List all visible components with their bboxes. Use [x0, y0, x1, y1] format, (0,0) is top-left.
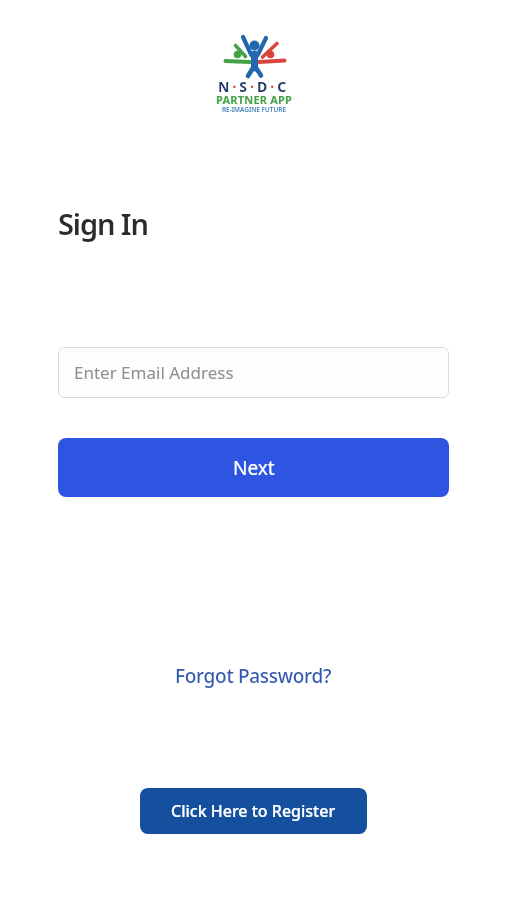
staticText: Click Here to Register: [171, 800, 336, 822]
staticText: Enter Email Address: [74, 361, 234, 384]
staticText: Next: [233, 455, 275, 481]
button[interactable]: Forgot Password?: [175, 663, 332, 689]
staticText: Forgot Password?: [175, 663, 332, 689]
button[interactable]: Next: [58, 438, 449, 497]
button[interactable]: Click Here to Register: [140, 788, 367, 834]
staticText: RE-IMAGINE FUTURE: [222, 105, 286, 114]
staticText: Sign In: [58, 204, 148, 243]
staticText: PARTNER APP: [216, 92, 293, 107]
staticText: N·S·D·C: [218, 77, 290, 96]
button[interactable]: Enter Email Address: [58, 347, 449, 398]
